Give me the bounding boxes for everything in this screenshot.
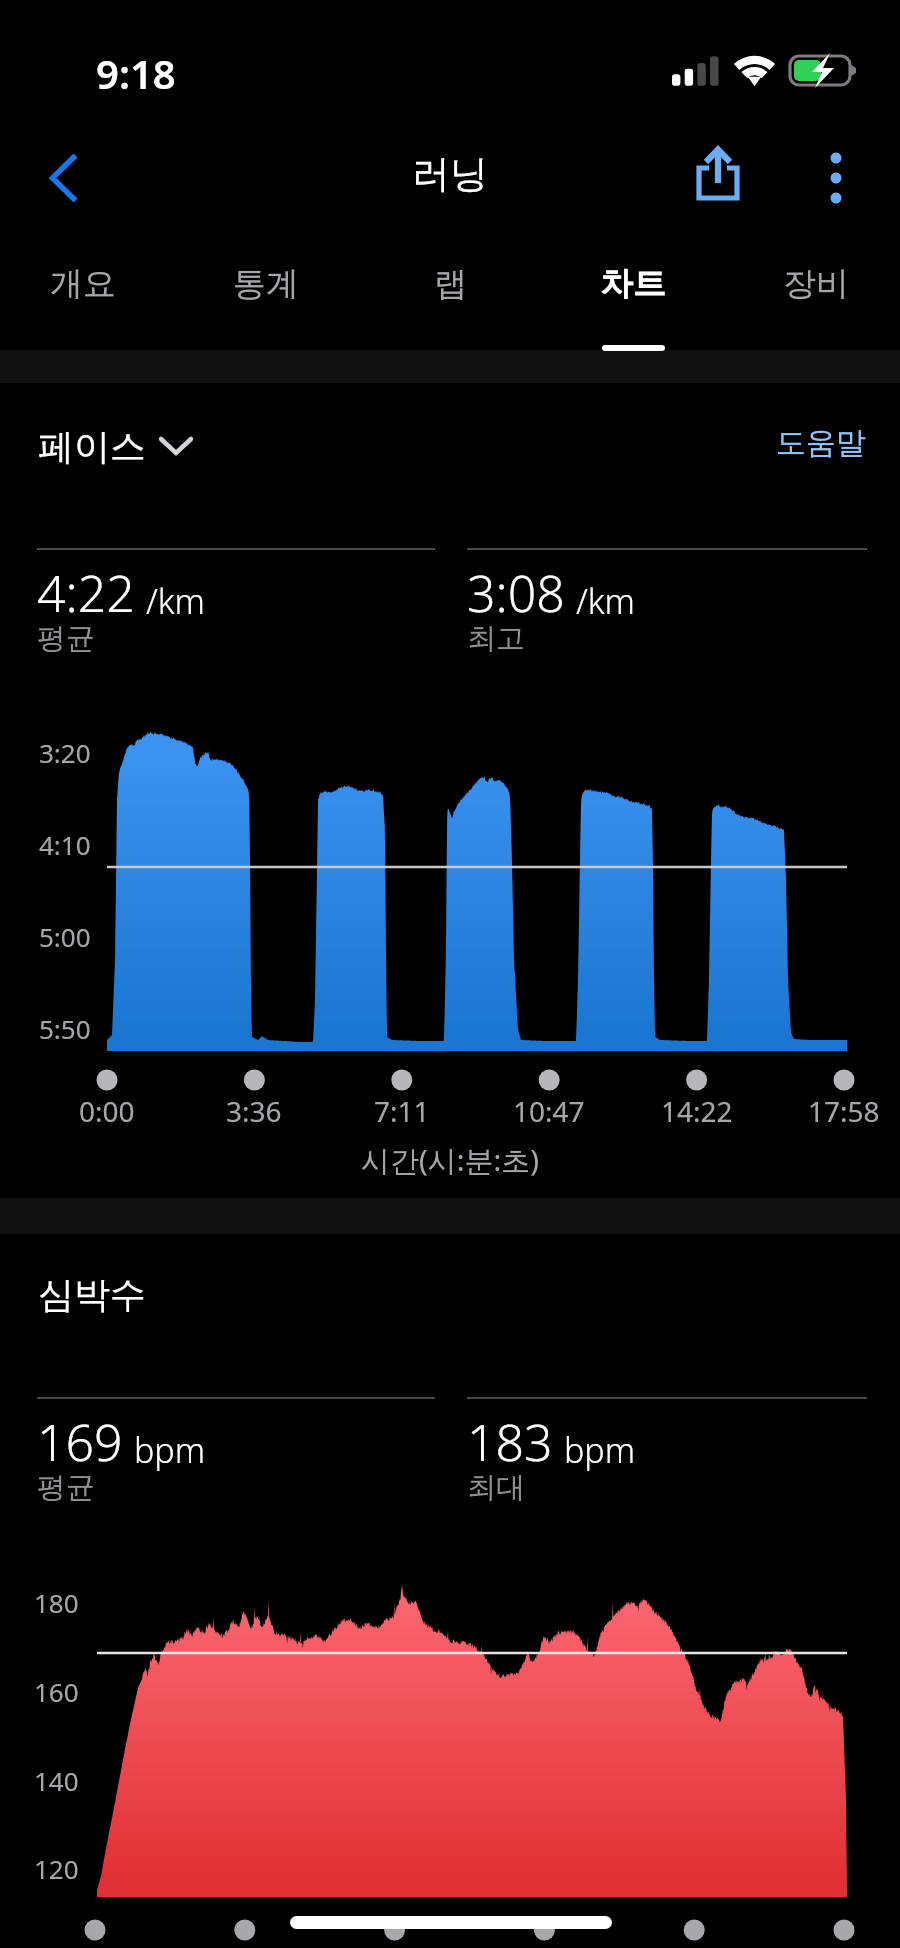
button[interactable]: More options: [786, 120, 886, 235]
staticText: bpm: [564, 1427, 636, 1473]
staticText: 시간(시:분:초): [361, 1140, 539, 1180]
staticText: 3:08: [467, 559, 565, 627]
staticText: bpm: [134, 1427, 206, 1473]
button[interactable]: Back: [0, 120, 125, 235]
staticText: 10:47: [513, 1092, 585, 1130]
button[interactable]: 개요: [0, 235, 174, 350]
staticText: 17:58: [808, 1092, 880, 1130]
staticText: 도움말: [776, 424, 866, 462]
staticText: 9:18: [96, 46, 176, 100]
staticText: 120: [34, 1851, 79, 1886]
staticText: 3:20: [39, 735, 91, 770]
button[interactable]: Share: [670, 120, 766, 235]
staticText: 5:50: [39, 1011, 91, 1046]
staticText: 장비: [783, 263, 849, 305]
button[interactable]: 페이스: [38, 414, 192, 478]
staticText: 14:22: [661, 1092, 733, 1130]
staticText: 심박수: [38, 1272, 146, 1317]
staticText: 0:00: [79, 1092, 135, 1130]
staticText: 차트: [600, 263, 666, 305]
button[interactable]: 도움말: [776, 424, 866, 462]
staticText: 183: [467, 1408, 553, 1476]
button[interactable]: 장비: [725, 235, 900, 350]
button[interactable]: 통계: [175, 235, 357, 350]
staticText: 140: [34, 1763, 79, 1798]
staticText: 7:11: [374, 1092, 430, 1130]
button[interactable]: 차트: [542, 235, 724, 350]
staticText: 160: [34, 1674, 79, 1709]
staticText: 3:36: [226, 1092, 282, 1130]
staticText: 4:10: [39, 827, 91, 862]
staticText: 개요: [50, 263, 116, 305]
staticText: 4:22: [37, 559, 135, 627]
staticText: 평균: [37, 1469, 95, 1506]
staticText: /km: [146, 578, 205, 624]
staticText: 최대: [467, 1469, 525, 1506]
staticText: 180: [34, 1585, 79, 1620]
staticText: 5:00: [39, 919, 91, 954]
staticText: 랩: [434, 263, 467, 305]
staticText: 최고: [467, 620, 525, 657]
staticText: 통계: [233, 263, 299, 305]
staticText: /km: [576, 578, 635, 624]
button[interactable]: 심박수: [38, 1262, 146, 1326]
staticText: 러닝: [412, 150, 488, 198]
staticText: 평균: [37, 620, 95, 657]
staticText: 169: [37, 1408, 123, 1476]
staticText: 페이스: [38, 424, 146, 469]
button[interactable]: 랩: [359, 235, 541, 350]
